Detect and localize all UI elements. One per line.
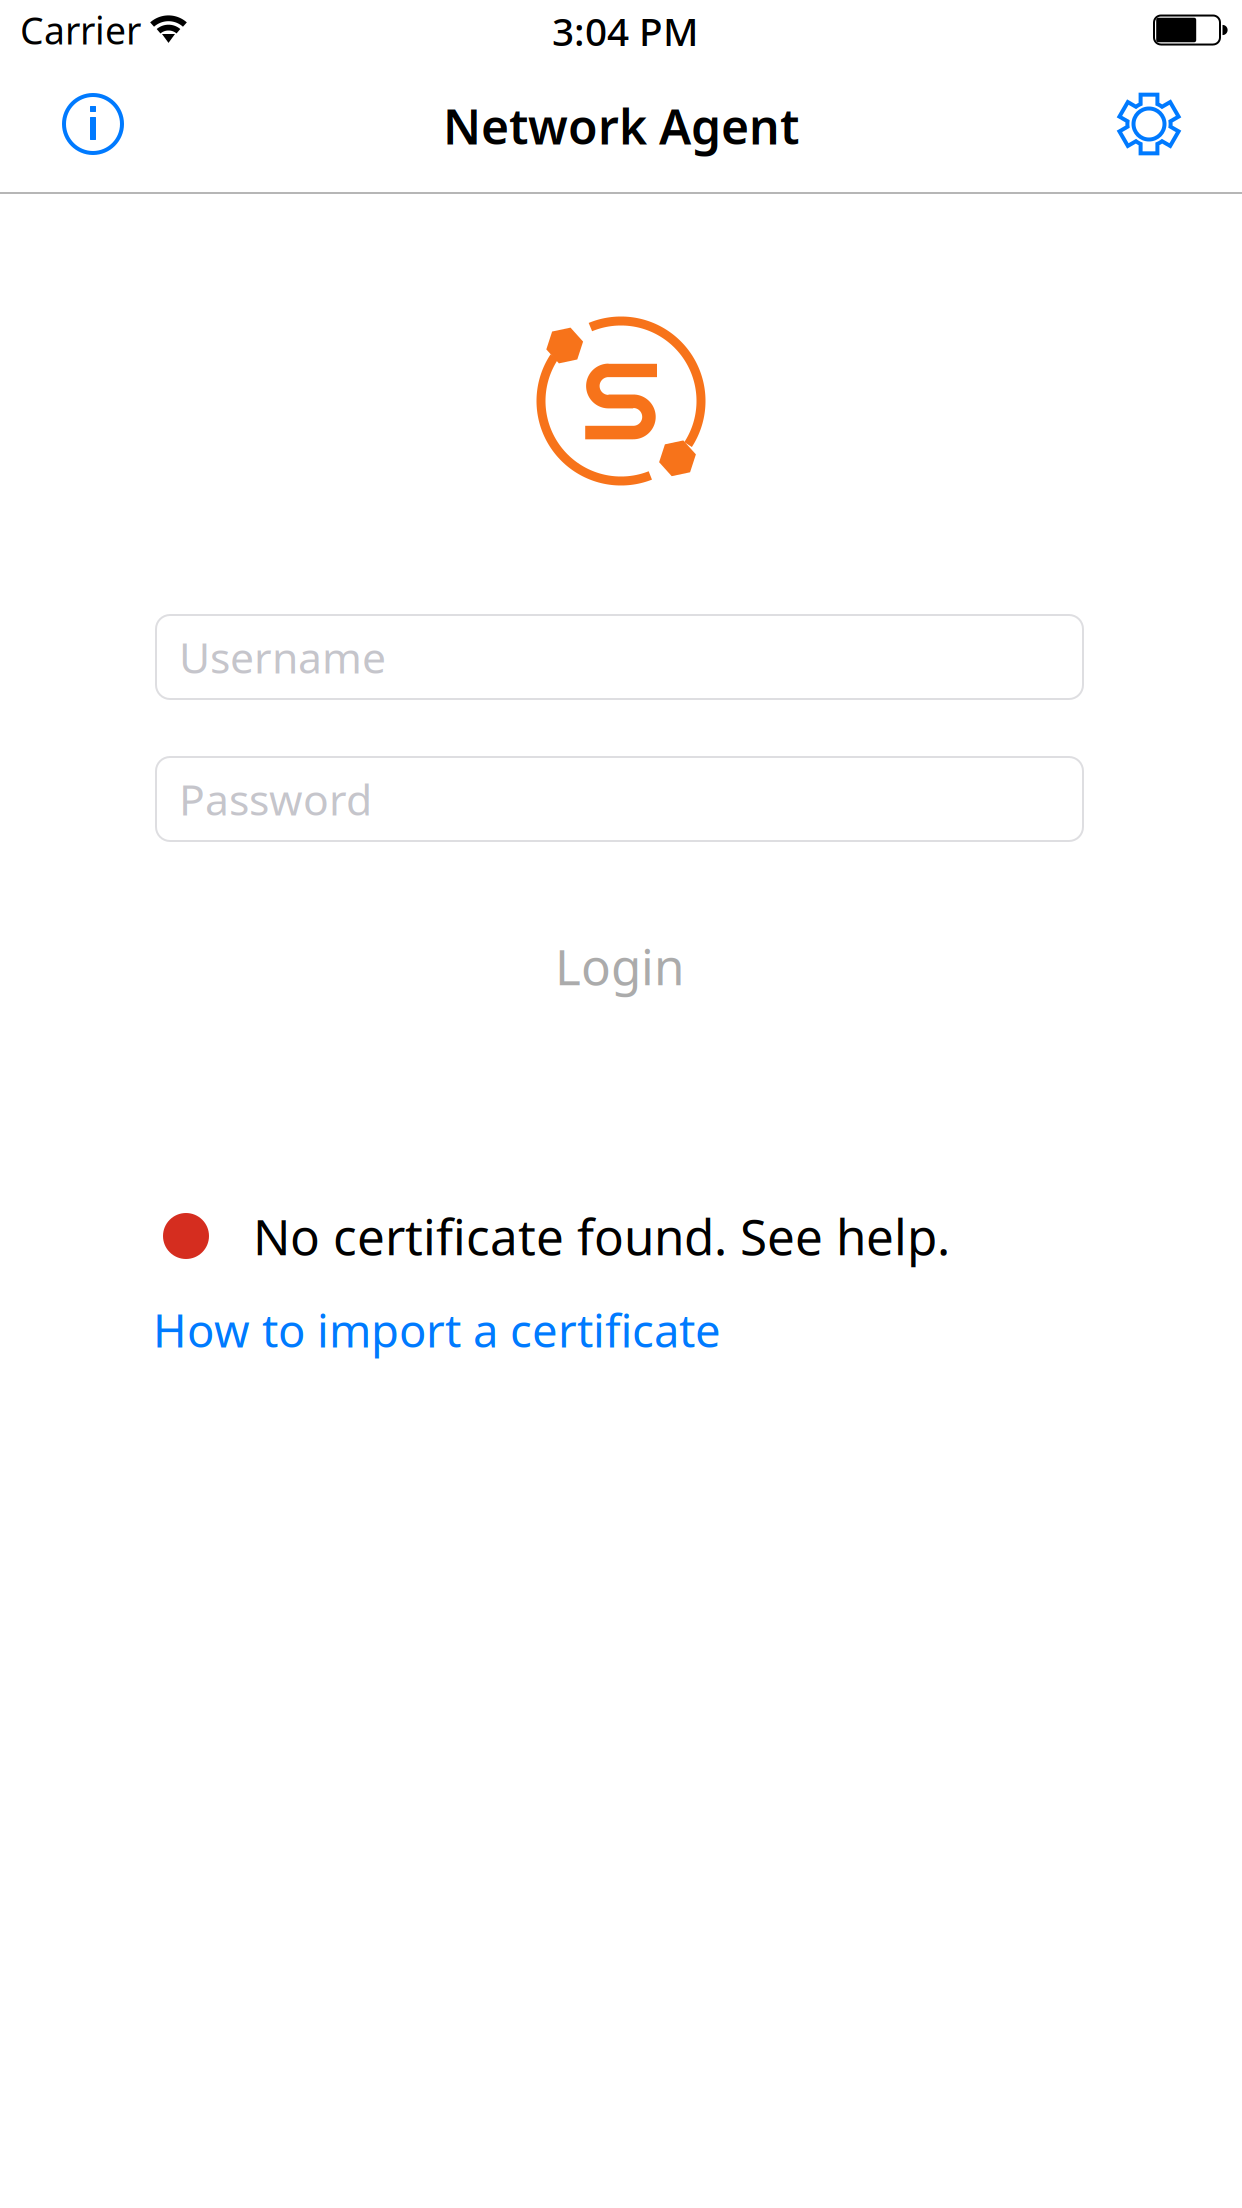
staticText: Carrier [20,5,141,55]
staticText: Username [179,629,386,685]
button[interactable]: Information [43,71,143,181]
button[interactable]: Settings [1099,71,1199,181]
button[interactable]: Login [156,936,1083,996]
staticText: 3:04 PM [552,5,698,57]
staticText: Password [179,771,372,827]
staticText: Network Agent [443,94,799,158]
staticText: How to import a certificate [153,1300,721,1360]
button[interactable]: Password [156,757,1083,841]
button[interactable]: Username [156,615,1083,699]
button[interactable]: How to import a certificate [153,1307,721,1353]
staticText: No certificate found. See help. [253,1203,950,1269]
staticText: Login [555,933,684,999]
